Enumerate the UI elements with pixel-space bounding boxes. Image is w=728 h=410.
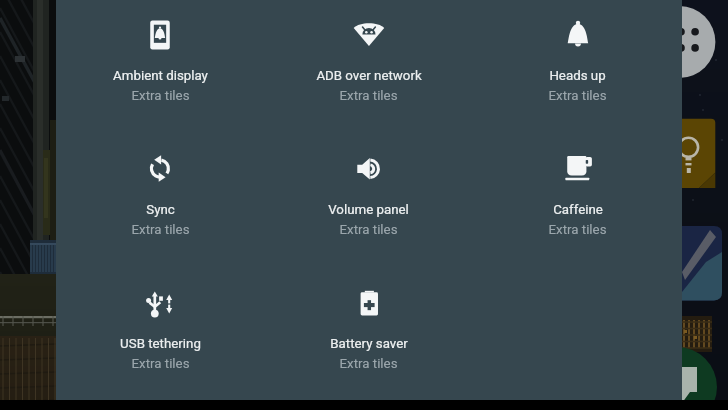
staticText: Extra tiles bbox=[131, 222, 190, 238]
staticText: Extra tiles bbox=[548, 222, 607, 238]
staticText: Ambient display bbox=[113, 68, 208, 84]
button[interactable]: Sync bbox=[56, 134, 264, 268]
staticText: Extra tiles bbox=[339, 356, 398, 372]
staticText: ADB over network bbox=[316, 68, 422, 84]
staticText: Battery saver bbox=[330, 336, 408, 352]
button[interactable]: Battery saver bbox=[264, 268, 473, 400]
button[interactable]: Volume panel bbox=[264, 134, 473, 268]
staticText: Sync bbox=[146, 202, 175, 218]
button[interactable]: ADB over network bbox=[264, 0, 473, 134]
staticText: Caffeine bbox=[553, 202, 603, 218]
button[interactable]: USB tethering bbox=[56, 268, 264, 400]
button[interactable]: Ambient display bbox=[56, 0, 264, 134]
staticText: USB tethering bbox=[120, 336, 201, 352]
button[interactable]: Heads up bbox=[473, 0, 682, 134]
button[interactable]: Caffeine bbox=[473, 134, 682, 268]
staticText: Extra tiles bbox=[131, 356, 190, 372]
staticText: Heads up bbox=[549, 68, 606, 84]
staticText: Extra tiles bbox=[339, 222, 398, 238]
staticText: Extra tiles bbox=[339, 88, 398, 104]
staticText: Extra tiles bbox=[548, 88, 607, 104]
staticText: Volume panel bbox=[328, 202, 409, 218]
staticText: Extra tiles bbox=[131, 88, 190, 104]
